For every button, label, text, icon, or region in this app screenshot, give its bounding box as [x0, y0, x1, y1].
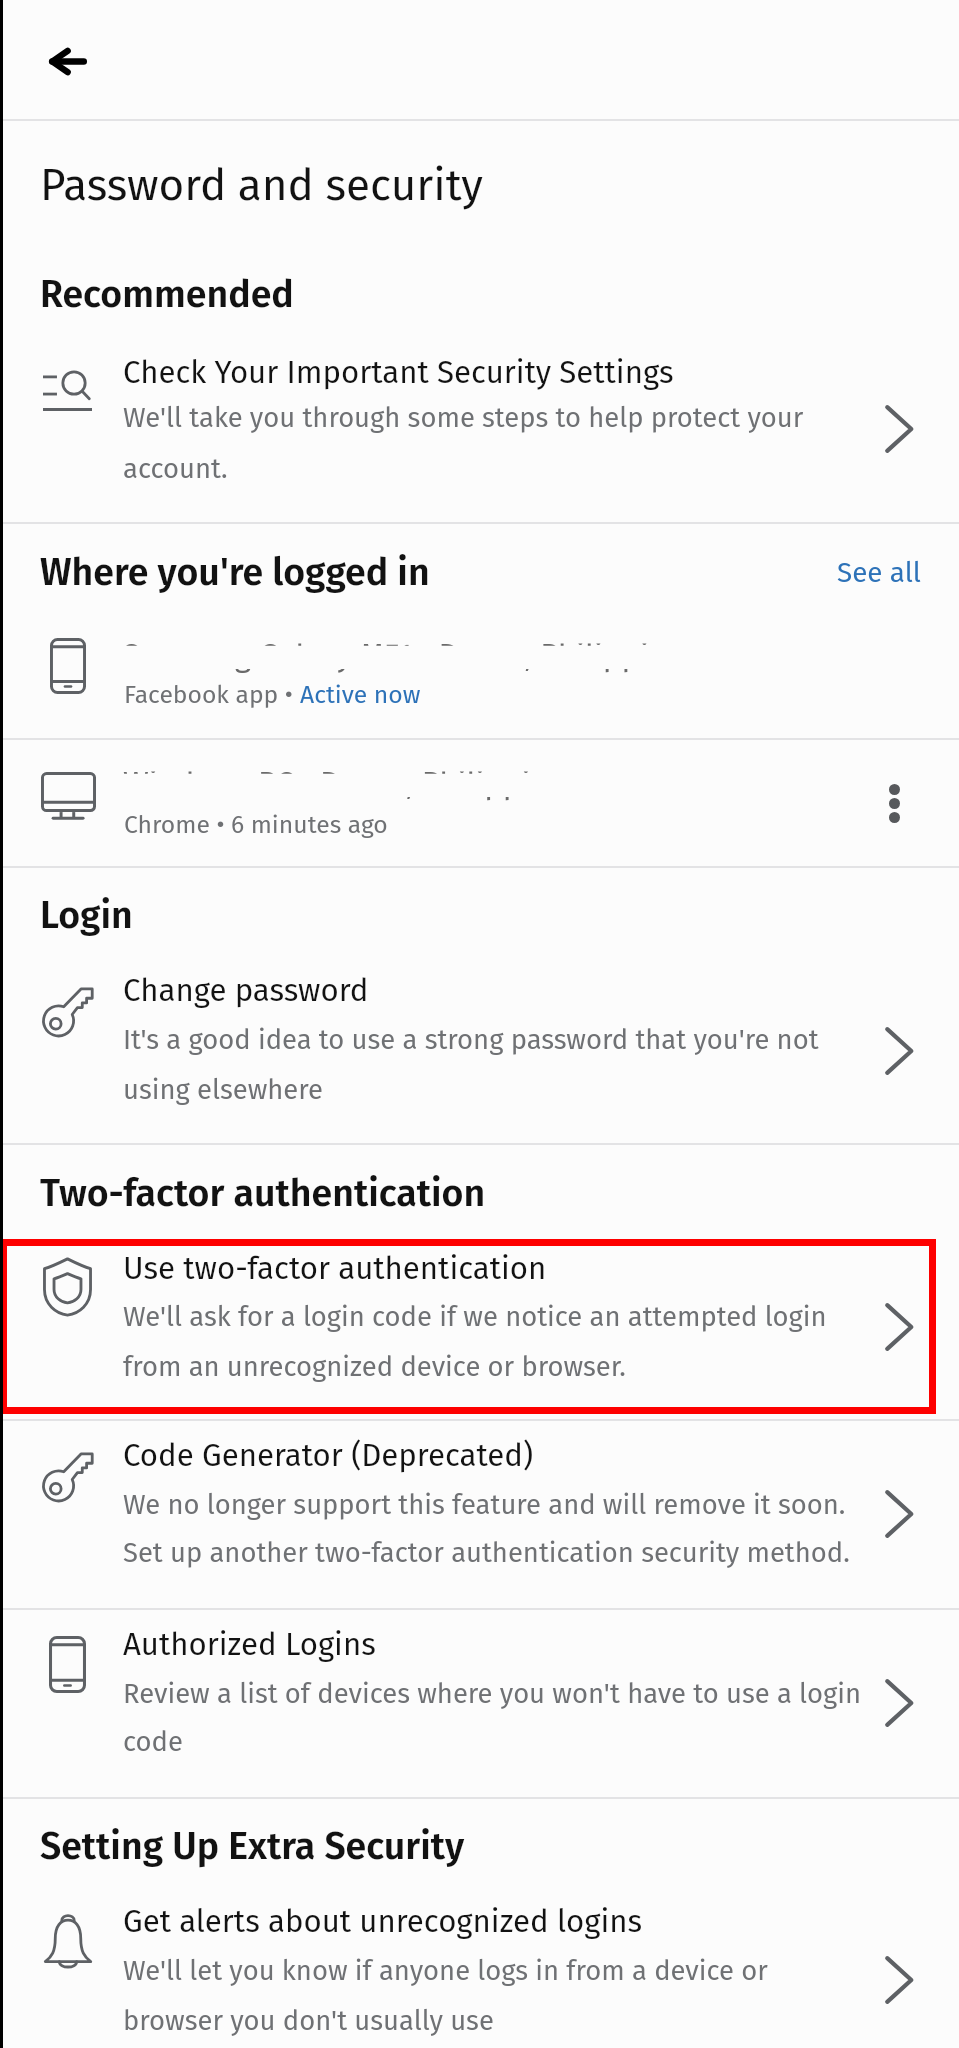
button[interactable]	[0, 738, 959, 866]
staticText: Facebook app •	[124, 680, 300, 710]
staticText: Review a list of devices where you won't…	[123, 1677, 861, 1710]
staticText: Get alerts about unrecognized logins	[123, 1903, 643, 1940]
staticText: It's a good idea to use a strong passwor…	[123, 1023, 819, 1056]
staticText: Where you're logged in	[40, 550, 430, 595]
staticText: Authorized Logins	[123, 1626, 376, 1663]
button[interactable]: More options	[864, 773, 924, 833]
staticText: We'll let you know if anyone logs in fro…	[123, 1954, 768, 1987]
staticText: Two-factor authentication	[40, 1171, 486, 1216]
staticText: We'll take you through some steps to hel…	[123, 401, 804, 434]
staticText: Login	[40, 893, 133, 938]
staticText: Set up another two-factor authentication…	[123, 1536, 850, 1569]
staticText: Check Your Important Security Settings	[123, 354, 674, 391]
staticText: We no longer support this feature and wi…	[123, 1488, 846, 1521]
staticText: using elsewhere	[123, 1073, 323, 1106]
staticText: We'll ask for a login code if we notice …	[123, 1300, 827, 1333]
staticText: Password and security	[40, 159, 483, 212]
staticText: Windows PC • Davao, Philippines	[123, 765, 581, 802]
staticText: See all	[837, 556, 921, 589]
button[interactable]	[0, 522, 959, 738]
button[interactable]	[0, 1239, 959, 1414]
staticText: from an unrecognized device or browser.	[123, 1350, 626, 1383]
button[interactable]	[0, 1608, 959, 1797]
staticText: Recommended	[40, 272, 294, 317]
staticText: Code Generator (Deprecated)	[123, 1437, 534, 1474]
button[interactable]	[0, 119, 959, 522]
staticText: Use two-factor authentication	[123, 1250, 547, 1287]
staticText: browser you don't usually use	[123, 2004, 494, 2037]
staticText: account.	[123, 452, 228, 485]
button[interactable]	[0, 866, 959, 1143]
button[interactable]	[0, 1797, 959, 2048]
staticText: code	[123, 1725, 183, 1758]
staticText: Samsung Galaxy M51 • Davao, Philippines	[123, 637, 699, 674]
staticText: Active now	[300, 680, 421, 710]
button[interactable]: See all	[837, 462, 921, 589]
button[interactable]: Back	[24, 17, 112, 105]
staticText: Chrome •	[124, 810, 231, 840]
staticText: 6 minutes ago	[231, 810, 388, 840]
staticText: Change password	[123, 972, 369, 1009]
button[interactable]	[0, 1419, 959, 1608]
staticText: Setting Up Extra Security	[40, 1824, 465, 1869]
